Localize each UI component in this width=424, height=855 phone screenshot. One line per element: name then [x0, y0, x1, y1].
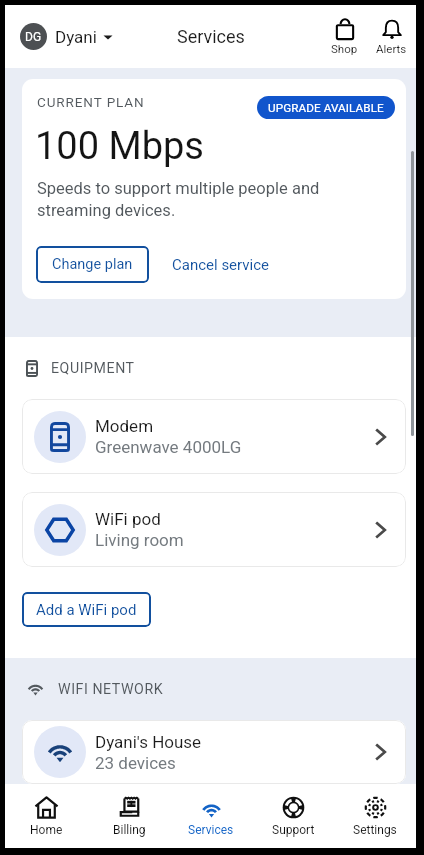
staticText: Support — [272, 823, 315, 837]
other: Modem — [369, 425, 393, 449]
button[interactable]: Shop — [324, 16, 365, 57]
button[interactable]: Modem — [22, 399, 406, 474]
staticText: Cancel service — [172, 256, 270, 274]
staticText: DG — [25, 30, 42, 44]
staticText: WIFI NETWORK — [58, 681, 164, 698]
staticText: Settings — [353, 823, 397, 837]
staticText: Speeds to support multiple people and st… — [37, 179, 329, 220]
button[interactable]: Home — [5, 788, 88, 845]
staticText: Modem — [95, 416, 154, 436]
button[interactable]: Settings — [334, 788, 416, 845]
button[interactable]: Billing — [88, 788, 170, 845]
staticText: EQUIPMENT — [51, 360, 135, 377]
staticText: Greenwave 4000LG — [95, 437, 242, 457]
button[interactable]: Change plan — [36, 246, 149, 283]
button[interactable]: WiFi pod — [22, 492, 406, 567]
staticText: Dyani — [55, 27, 97, 47]
button[interactable]: Dyani's House — [22, 720, 406, 784]
other: Alerts — [381, 18, 403, 40]
staticText: Living room — [95, 530, 184, 550]
staticText: WiFi pod — [95, 509, 161, 529]
staticText: CURRENT PLAN — [37, 94, 145, 110]
button[interactable]: Cancel service — [158, 246, 284, 283]
other: Dyani's House — [369, 740, 393, 764]
other: WiFi pod — [369, 518, 393, 542]
button[interactable]: DG — [16, 19, 117, 54]
other: Shop — [334, 18, 356, 40]
staticText: Home — [30, 823, 63, 837]
button[interactable]: Add a WiFi pod — [22, 592, 151, 627]
staticText: 23 devices — [95, 753, 176, 773]
staticText: Add a WiFi pod — [36, 601, 137, 619]
staticText: Shop — [331, 42, 358, 55]
staticText: Services — [188, 823, 234, 837]
staticText: Billing — [113, 823, 146, 837]
staticText: Change plan — [52, 256, 133, 273]
staticText: 100 Mbps — [35, 124, 204, 169]
staticText: Alerts — [376, 42, 407, 55]
button[interactable]: Support — [252, 788, 334, 845]
staticText: UPGRADE AVAILABLE — [268, 101, 384, 115]
staticText: Services — [177, 26, 245, 47]
button[interactable]: Services — [170, 788, 252, 845]
button[interactable]: UPGRADE AVAILABLE — [257, 96, 395, 119]
staticText: Dyani's House — [95, 732, 202, 752]
button[interactable]: Alerts — [369, 16, 414, 57]
